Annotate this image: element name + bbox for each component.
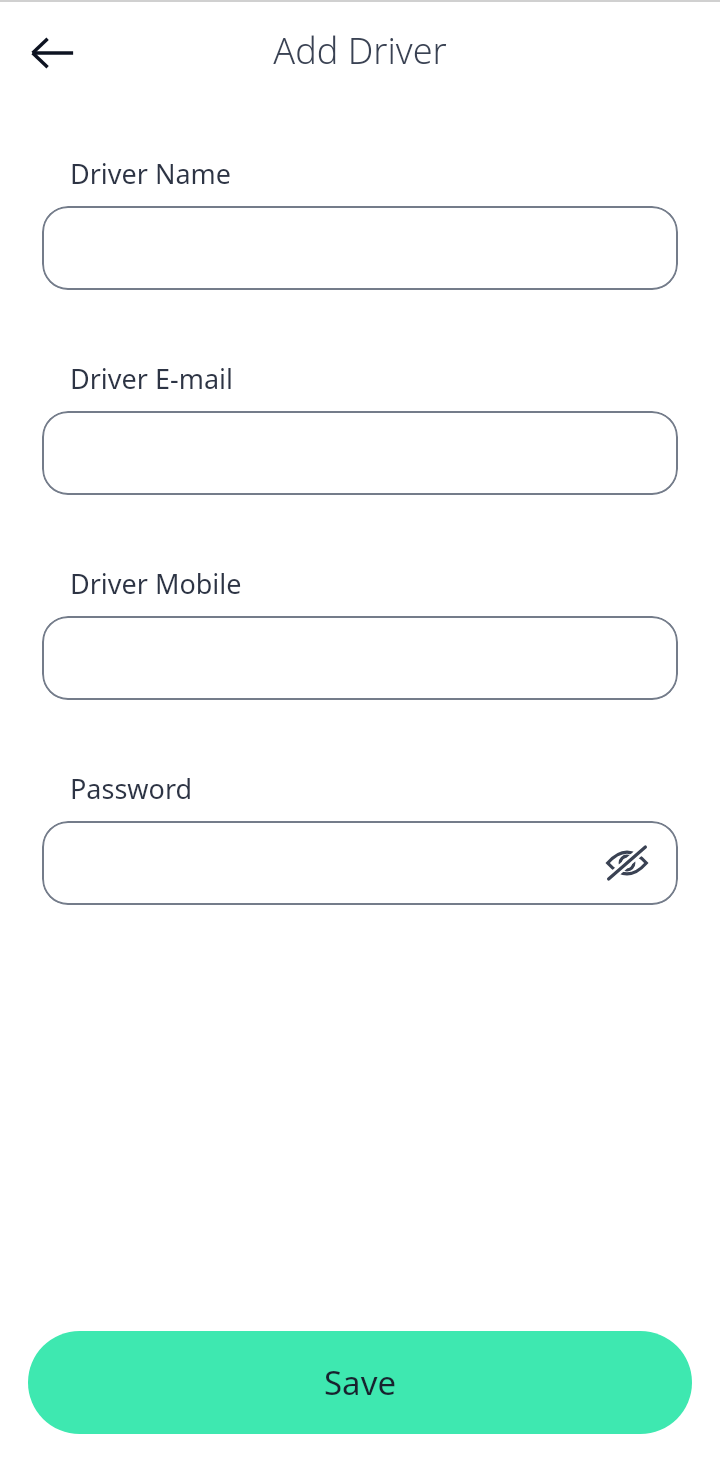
staticText: Save [324,1360,397,1405]
button[interactable]: Show password [42,821,678,905]
staticText: Add Driver [0,26,720,75]
staticText: Password [70,770,193,807]
staticText: Driver Mobile [70,565,242,602]
button[interactable] [42,616,678,700]
staticText: Driver Name [70,155,232,192]
button[interactable]: Save [28,1331,692,1434]
button[interactable]: Back [14,15,90,91]
button[interactable] [42,411,678,495]
staticText: Driver E-mail [70,360,233,397]
button[interactable]: Show password [598,834,656,892]
button[interactable] [42,206,678,290]
